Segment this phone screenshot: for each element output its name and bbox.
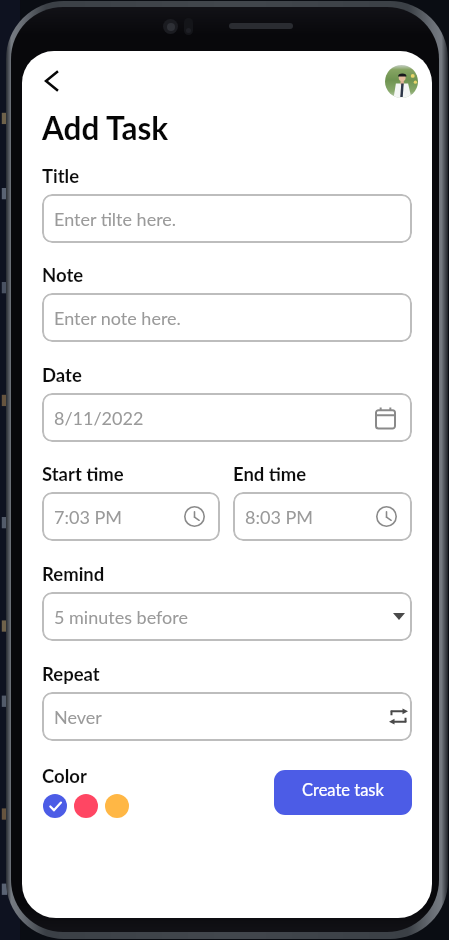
staticText: Remind xyxy=(42,563,105,585)
button[interactable]: Orange colour xyxy=(105,794,129,818)
button[interactable]: 7:03 PM xyxy=(42,492,220,541)
staticText: 7:03 PM xyxy=(54,506,122,528)
staticText: 8/11/2022 xyxy=(54,407,144,429)
staticText: Date xyxy=(42,364,82,386)
staticText: Color xyxy=(42,765,87,787)
button[interactable]: Back xyxy=(31,64,71,98)
staticText: 5 minutes before xyxy=(54,606,188,628)
staticText: Add Task xyxy=(42,109,169,147)
staticText: End time xyxy=(233,463,307,485)
staticText: Create task xyxy=(302,780,384,800)
staticText: Note xyxy=(42,264,84,286)
staticText: Never xyxy=(54,706,102,728)
button[interactable]: 8:03 PM xyxy=(233,492,412,541)
staticText: Enter note here. xyxy=(54,307,181,329)
staticText: Start time xyxy=(42,463,124,485)
button[interactable]: Pink colour xyxy=(74,794,98,818)
button[interactable]: Enter tilte here. xyxy=(42,194,412,243)
button[interactable]: 5 minutes before xyxy=(42,592,412,641)
staticText: Enter tilte here. xyxy=(54,208,177,230)
staticText: Title xyxy=(42,165,80,187)
button[interactable]: Blue colour xyxy=(43,794,67,818)
button[interactable]: Profile xyxy=(385,65,418,98)
button[interactable]: 8/11/2022 xyxy=(42,393,412,442)
staticText: Repeat xyxy=(42,663,100,685)
button[interactable]: Never xyxy=(42,692,412,741)
button[interactable]: Create task xyxy=(274,770,412,815)
button[interactable]: Enter note here. xyxy=(42,293,412,342)
staticText: 8:03 PM xyxy=(245,506,313,528)
